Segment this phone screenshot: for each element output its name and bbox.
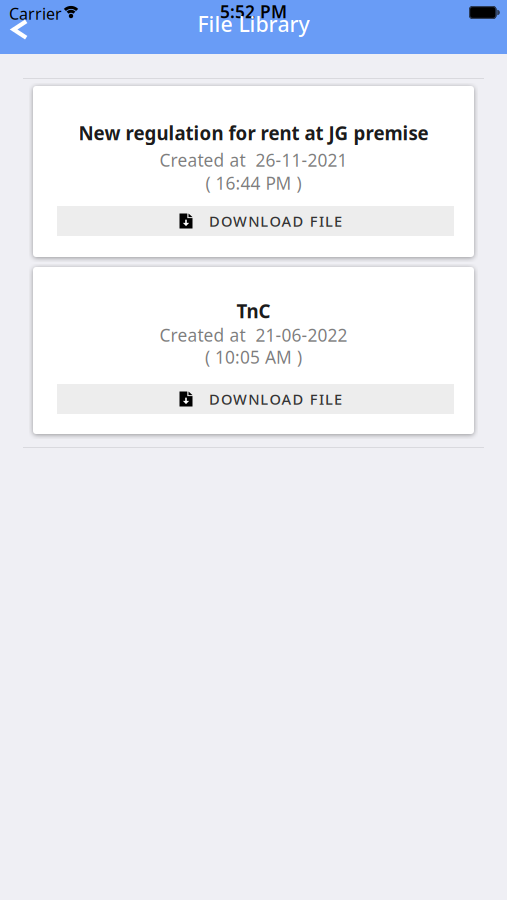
staticText: DOWNLOAD FILE: [209, 389, 342, 409]
staticText: ( 16:44 PM ): [205, 171, 301, 194]
staticText: Created at 26-11-2021: [159, 148, 347, 171]
staticText: New regulation for rent at JG premise: [78, 121, 428, 145]
staticText: Created at 21-06-2022: [159, 323, 347, 346]
staticText: DOWNLOAD FILE: [209, 211, 342, 231]
staticText: TnC: [236, 299, 270, 323]
button[interactable]: DOWNLOAD FILE: [57, 384, 454, 414]
staticText: File Library: [197, 9, 309, 38]
button[interactable]: Back: [2, 15, 36, 44]
button[interactable]: DOWNLOAD FILE: [57, 206, 454, 236]
staticText: ( 10:05 AM ): [205, 345, 302, 368]
staticText: Carrier: [9, 3, 62, 24]
staticText: 5:52 PM: [220, 0, 287, 23]
